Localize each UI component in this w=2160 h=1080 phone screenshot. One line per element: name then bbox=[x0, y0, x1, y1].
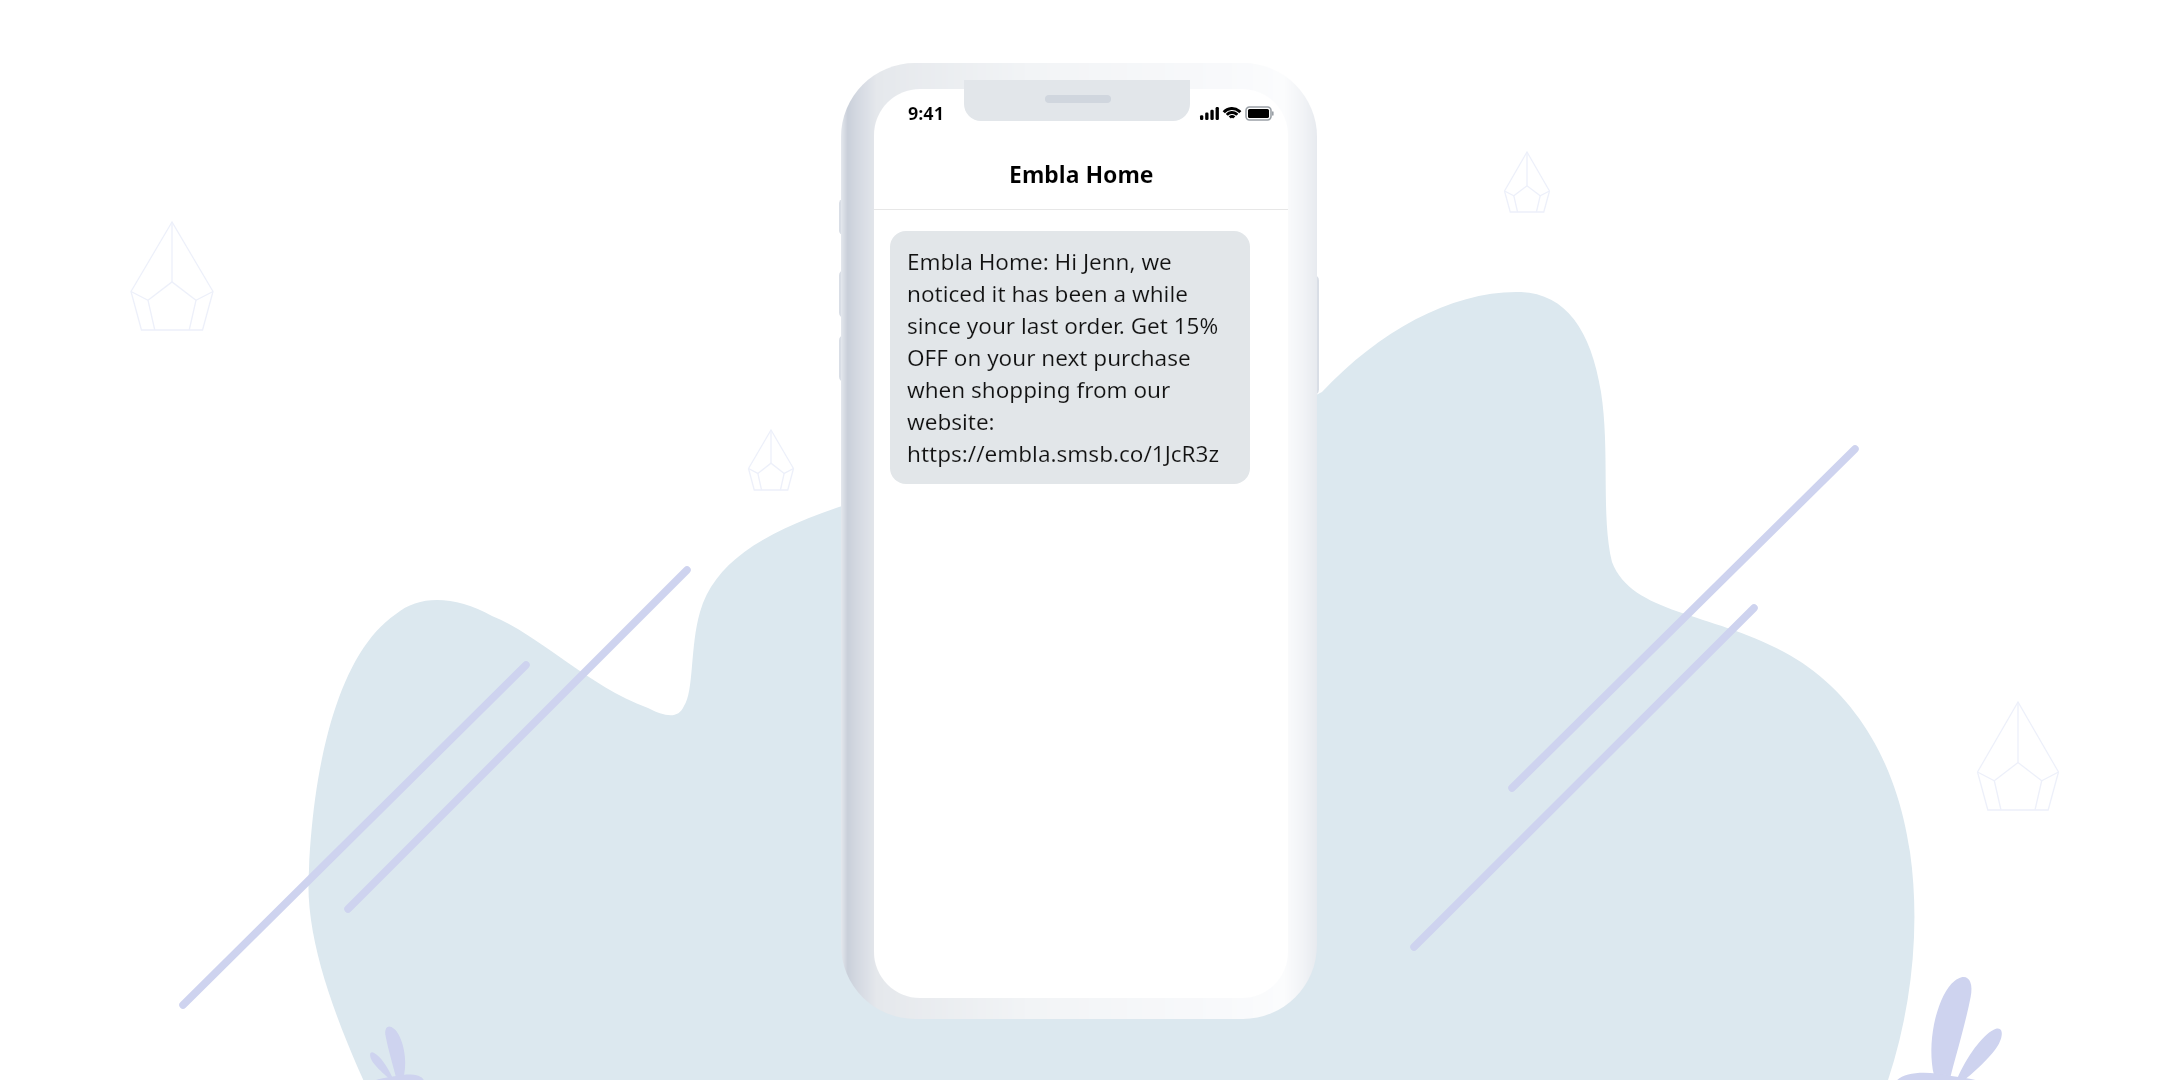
button[interactable]: Embla Home bbox=[874, 135, 1288, 209]
other: Cellular signal, Wi-Fi and battery statu… bbox=[1200, 107, 1273, 120]
staticText: 9:41 bbox=[908, 101, 944, 126]
button[interactable]: Embla Home: Hi Jenn, we noticed it has b… bbox=[890, 231, 1250, 484]
staticText: Embla Home: Hi Jenn, we noticed it has b… bbox=[907, 246, 1220, 469]
staticText: Embla Home bbox=[1009, 158, 1154, 189]
